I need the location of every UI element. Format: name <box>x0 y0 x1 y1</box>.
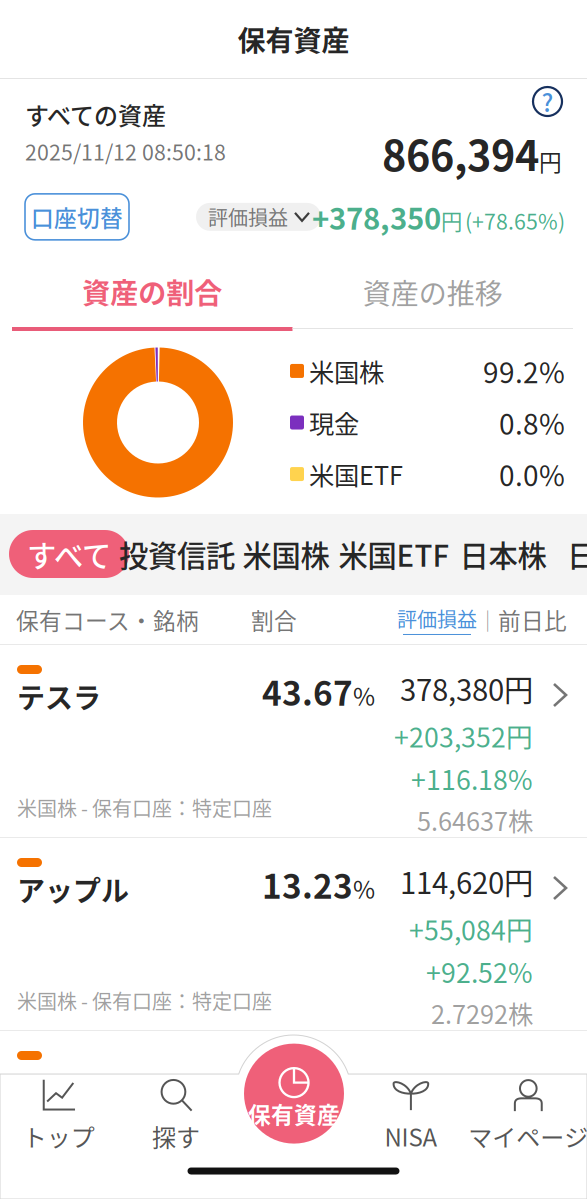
staticText: +203,352円 <box>394 716 533 755</box>
staticText: 0.8% <box>499 402 565 443</box>
staticText: 円 <box>441 205 462 236</box>
staticText: すべての資産 <box>25 97 166 132</box>
staticText: 米国株 - 保有口座：特定口座 <box>17 793 272 822</box>
staticText: % <box>353 871 375 906</box>
staticText: 99.2% <box>483 351 565 391</box>
button[interactable]: 評価損益 <box>397 604 477 635</box>
staticText: 円 <box>539 145 562 177</box>
staticText: +55,084円 <box>409 909 533 948</box>
button[interactable]: 日本株 <box>441 530 564 578</box>
button[interactable]: 前日比 <box>498 603 567 636</box>
button[interactable]: 資産の割合 <box>12 256 292 331</box>
button[interactable]: 日本 <box>549 530 587 578</box>
staticText: 2.7292株 <box>431 995 533 1031</box>
staticText: 5.64637株 <box>417 802 533 838</box>
button[interactable]: テスラ <box>0 645 587 838</box>
button[interactable]: NISA <box>352 1085 469 1147</box>
staticText: 13.23 <box>262 860 353 908</box>
staticText: 114,620円 <box>400 860 533 902</box>
staticText: すべて <box>27 533 111 575</box>
staticText: +378,350 <box>312 196 441 238</box>
staticText: 保有コース・銘柄 <box>16 603 199 636</box>
staticText: 前日比 <box>498 603 567 636</box>
button[interactable]: 口座切替 <box>25 194 129 240</box>
staticText: +92.52% <box>426 952 533 991</box>
button[interactable]: 保有資産 <box>244 1044 344 1144</box>
button[interactable]: 資産の推移 <box>292 256 573 331</box>
staticText: 378,380円 <box>400 667 533 709</box>
staticText: 日本 <box>567 533 587 575</box>
staticText: ｜ <box>477 604 498 635</box>
button[interactable]: 米国ETF <box>320 530 467 578</box>
staticText: ? <box>541 84 553 119</box>
button[interactable]: 評価損益 <box>196 203 321 231</box>
staticText: 2025/11/12 08:50:18 <box>25 136 226 167</box>
button[interactable]: マイページ <box>470 1085 587 1147</box>
staticText: 資産の推移 <box>363 272 503 312</box>
staticText: 評価損益 <box>397 604 477 633</box>
staticText: 割合 <box>251 603 297 636</box>
staticText: +116.18% <box>411 759 533 798</box>
button[interactable]: トップ <box>0 1085 117 1147</box>
staticText: 探す <box>152 1119 200 1153</box>
staticText: 0.0% <box>499 454 565 494</box>
staticText: 口座切替 <box>31 200 123 233</box>
staticText: 投資信託 <box>119 533 235 575</box>
staticText: 43.67 <box>262 667 353 715</box>
staticText: 米国株 <box>309 353 384 389</box>
staticText: 保有資産 <box>248 1097 340 1130</box>
button[interactable]: ヘルプ <box>533 87 562 116</box>
staticText: 現金 <box>309 404 359 441</box>
staticText: 資産の割合 <box>82 271 222 312</box>
staticText: 保有資産 <box>237 19 349 59</box>
button[interactable]: すべて <box>9 530 129 578</box>
button[interactable]: アップル <box>0 838 587 1031</box>
staticText: 日本株 <box>459 533 546 575</box>
staticText: バンガード・トータル・ストック <box>17 1071 454 1113</box>
button[interactable]: 米国株 <box>224 530 347 578</box>
button[interactable]: 投資信託 <box>101 530 253 578</box>
staticText: 50,017円 <box>454 1071 571 1113</box>
staticText: 866,394 <box>382 123 539 183</box>
staticText: % <box>353 678 375 713</box>
staticText: 米国株 <box>242 533 329 575</box>
staticText: 米国株 - 保有口座：特定口座 <box>17 986 272 1015</box>
staticText: マイページ <box>468 1119 587 1153</box>
staticText: 米国ETF <box>338 533 449 575</box>
staticText: (+78.65%) <box>465 205 565 236</box>
staticText: 評価損益 <box>208 202 288 231</box>
staticText: 米国ETF <box>309 456 403 492</box>
staticText: NISA <box>384 1119 437 1153</box>
button[interactable]: 探す <box>118 1085 235 1147</box>
staticText: トップ <box>23 1119 95 1153</box>
staticText: アップル <box>17 869 129 909</box>
staticText: テスラ <box>17 676 101 716</box>
